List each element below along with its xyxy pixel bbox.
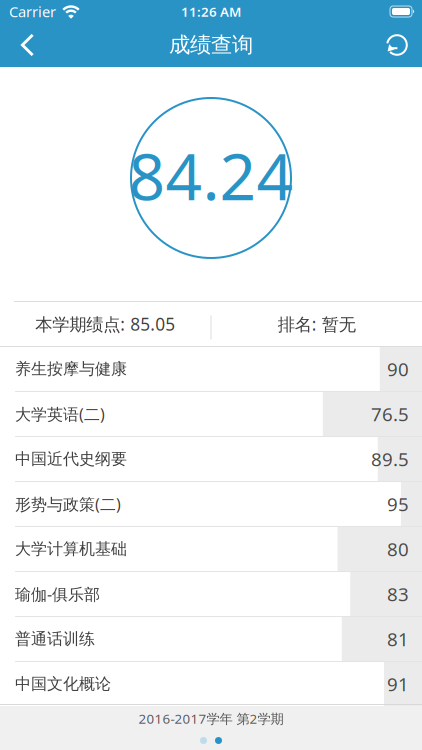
staticText: 中国文化概论 <box>15 674 111 694</box>
staticText: 本学期绩点: 85.05 <box>35 312 175 335</box>
button[interactable]: 形势与政策(二) <box>0 482 422 527</box>
button[interactable] <box>385 33 422 57</box>
button[interactable]: 瑜伽-俱乐部 <box>0 572 422 617</box>
staticText: 形势与政策(二) <box>15 493 121 515</box>
staticText: 76.5 <box>371 402 409 426</box>
staticText: 90 <box>387 357 409 381</box>
staticText: 95 <box>387 492 409 516</box>
button[interactable]: 中国文化概论 <box>0 662 422 706</box>
staticText: 排名: 暂无 <box>278 312 356 335</box>
staticText: 大学计算机基础 <box>15 539 127 559</box>
staticText: 81 <box>387 627 409 651</box>
button[interactable]: 中国近代史纲要 <box>0 437 422 482</box>
staticText: 89.5 <box>371 447 409 471</box>
staticText: 瑜伽-俱乐部 <box>15 583 100 605</box>
staticText: 91 <box>387 672 409 696</box>
button[interactable]: 养生按摩与健康 <box>0 347 422 392</box>
button[interactable]: 普通话训练 <box>0 617 422 662</box>
staticText: 80 <box>387 537 409 561</box>
button[interactable] <box>0 33 44 56</box>
staticText: 中国近代史纲要 <box>15 449 127 469</box>
staticText: 83 <box>387 582 409 606</box>
button[interactable]: 大学英语(二) <box>0 392 422 437</box>
staticText: 养生按摩与健康 <box>15 359 127 379</box>
staticText: 84.24 <box>128 133 293 218</box>
staticText: 成绩查询 <box>169 32 253 58</box>
button[interactable]: 大学计算机基础 <box>0 527 422 572</box>
staticText: 2016-2017学年 第2学期 <box>138 710 283 727</box>
staticText: 大学英语(二) <box>15 403 105 425</box>
staticText: 普通话训练 <box>15 629 95 649</box>
staticText: Carrier <box>9 2 56 21</box>
staticText: 11:26 AM <box>181 3 241 20</box>
